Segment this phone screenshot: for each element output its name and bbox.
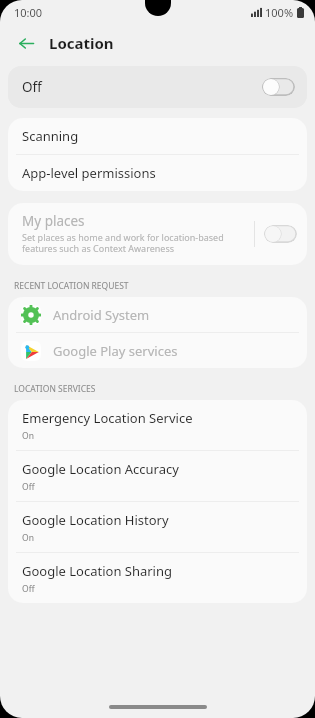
button[interactable]: Toggle xyxy=(262,78,295,96)
staticText: Off xyxy=(22,78,42,96)
button[interactable]: Emergency Location Service xyxy=(8,400,307,450)
staticText: Off xyxy=(22,481,35,493)
button[interactable]: Google Location Accuracy xyxy=(8,451,307,501)
button[interactable]: Off xyxy=(8,66,307,108)
staticText: Google Location History xyxy=(22,511,169,529)
button[interactable]: App-level permissions xyxy=(8,155,307,191)
button[interactable]: Scanning xyxy=(8,118,307,154)
button[interactable]: My places xyxy=(8,203,307,265)
staticText: Google Play services xyxy=(53,342,178,360)
button[interactable]: Android System xyxy=(8,297,307,332)
button[interactable]: Google Play services xyxy=(8,333,307,368)
button[interactable]: Toggle xyxy=(264,225,297,243)
staticText: Location xyxy=(49,33,114,53)
staticText: Emergency Location Service xyxy=(22,409,193,427)
staticText: Android System xyxy=(53,306,150,324)
staticText: Google Location Accuracy xyxy=(22,460,179,478)
button[interactable]: Back xyxy=(12,29,40,57)
staticText: Google Location Sharing xyxy=(22,562,173,580)
staticText: My places xyxy=(22,212,85,230)
staticText: App-level permissions xyxy=(22,164,156,182)
button[interactable]: Google Location History xyxy=(8,502,307,552)
staticText: Off xyxy=(22,583,35,595)
staticText: On xyxy=(22,430,34,442)
staticText: Scanning xyxy=(22,127,79,145)
staticText: LOCATION SERVICES xyxy=(14,383,96,395)
staticText: RECENT LOCATION REQUEST xyxy=(14,280,129,292)
button[interactable]: Google Location Sharing xyxy=(8,553,307,603)
staticText: 10:00 xyxy=(14,5,43,20)
staticText: 100% xyxy=(265,5,294,20)
staticText: On xyxy=(22,532,34,544)
staticText: Set places as home and work for location… xyxy=(22,231,246,255)
